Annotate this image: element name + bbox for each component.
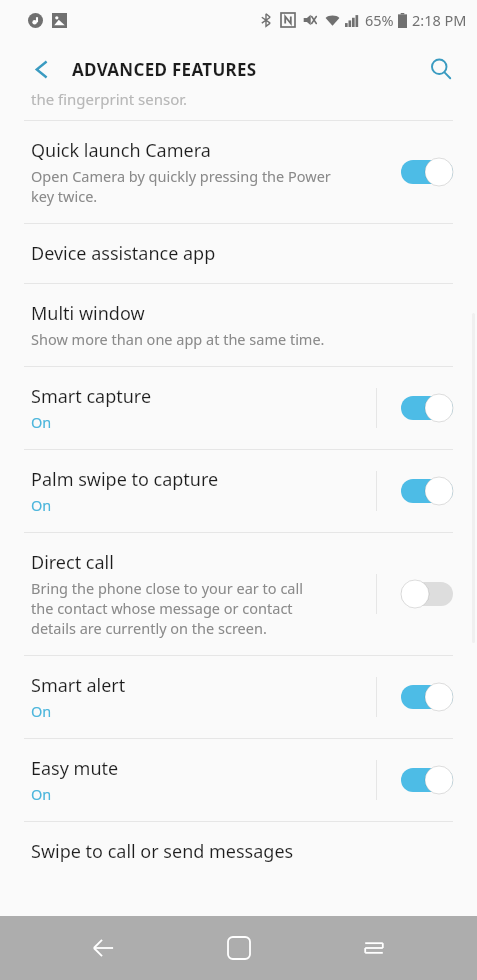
- button[interactable]: Toggle off: [401, 580, 453, 608]
- staticText: Palm swipe to capture: [31, 467, 219, 492]
- button[interactable]: Recents: [342, 916, 406, 980]
- staticText: On: [31, 701, 52, 721]
- button[interactable]: Palm swipe to capture: [0, 450, 477, 532]
- staticText: Quick launch Camera: [31, 138, 211, 163]
- button[interactable]: Search: [419, 47, 463, 91]
- staticText: Smart capture: [31, 384, 152, 409]
- button[interactable]: Direct call: [0, 533, 477, 655]
- staticText: 65%: [365, 10, 394, 30]
- button[interactable]: Swipe to call or send messages: [0, 822, 477, 881]
- button[interactable]: Smart capture: [0, 367, 477, 449]
- staticText: Bring the phone close to your ear to cal…: [31, 578, 303, 638]
- button[interactable]: Toggle on: [401, 766, 453, 794]
- staticText: 2:18 PM: [412, 10, 467, 30]
- button[interactable]: Back: [20, 48, 62, 90]
- button[interactable]: Toggle on: [401, 394, 453, 422]
- staticText: On: [31, 412, 52, 432]
- staticText: On: [31, 495, 52, 515]
- button[interactable]: Multi window: [0, 284, 477, 366]
- button[interactable]: Toggle on: [401, 683, 453, 711]
- staticText: Device assistance app: [31, 241, 216, 266]
- staticText: Direct call: [31, 550, 114, 575]
- staticText: the fingerprint sensor.: [31, 89, 188, 109]
- button[interactable]: Device assistance app: [0, 224, 477, 283]
- button[interactable]: Easy mute: [0, 739, 477, 821]
- button[interactable]: Back: [71, 916, 135, 980]
- staticText: ADVANCED FEATURES: [72, 58, 257, 81]
- staticText: Smart alert: [31, 673, 126, 698]
- staticText: Swipe to call or send messages: [31, 839, 294, 864]
- staticText: On: [31, 784, 52, 804]
- button[interactable]: Smart alert: [0, 656, 477, 738]
- button[interactable]: Home: [207, 916, 271, 980]
- staticText: Show more than one app at the same time.: [31, 329, 325, 349]
- staticText: Multi window: [31, 301, 145, 326]
- staticText: Easy mute: [31, 756, 119, 781]
- button[interactable]: Toggle on: [401, 477, 453, 505]
- button[interactable]: Toggle on: [401, 158, 453, 186]
- staticText: Open Camera by quickly pressing the Powe…: [31, 166, 331, 206]
- button[interactable]: Quick launch Camera: [0, 121, 477, 223]
